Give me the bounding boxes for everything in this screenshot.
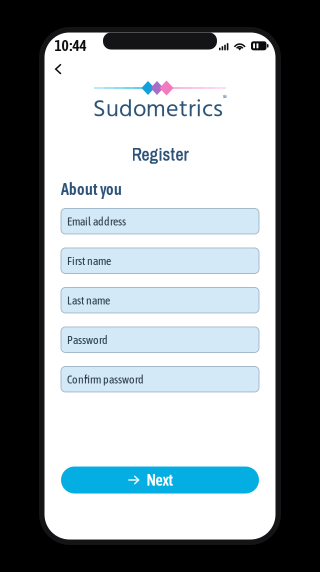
staticText: Password (67, 333, 108, 346)
staticText: Confirm password (67, 372, 144, 386)
staticText: Register (131, 142, 188, 166)
staticText: 10:44 (54, 37, 86, 54)
button[interactable]: First name (61, 248, 259, 273)
button[interactable]: Password (61, 327, 259, 352)
staticText: ® (223, 92, 227, 105)
button[interactable]: Last name (61, 287, 259, 313)
staticText: Next (146, 471, 173, 489)
staticText: Sudometrics (93, 91, 223, 129)
button[interactable]: Email address (61, 208, 259, 234)
staticText: About you (61, 180, 122, 198)
staticText: Last name (67, 293, 110, 307)
button[interactable]: Next (61, 466, 259, 493)
button[interactable]: Confirm password (61, 366, 259, 392)
staticText: First name (67, 254, 111, 267)
button[interactable]: Back (49, 59, 67, 79)
staticText: Email address (67, 214, 126, 228)
